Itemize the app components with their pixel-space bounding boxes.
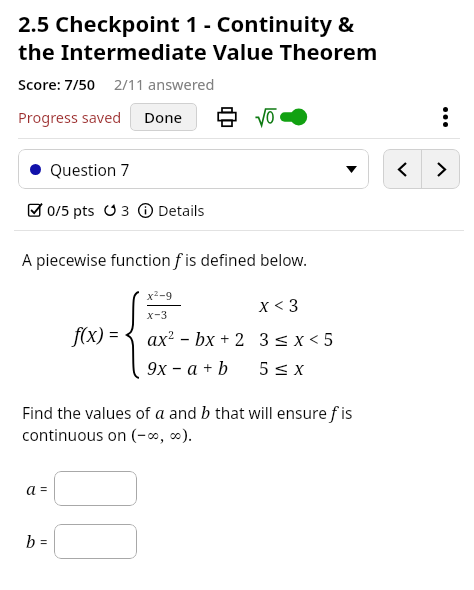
staticText: Score: 7/50 xyxy=(18,74,96,94)
staticText: Done xyxy=(144,107,183,127)
staticText: f xyxy=(331,401,337,423)
staticText: that will ensure xyxy=(211,402,331,423)
button[interactable]: Details xyxy=(138,200,205,220)
staticText: x xyxy=(294,327,304,352)
staticText: x xyxy=(147,307,154,323)
staticText: 3 ≤ xyxy=(259,327,294,352)
button[interactable]: Next question xyxy=(422,149,460,189)
staticText: A piecewise function xyxy=(22,249,175,270)
button[interactable]: Math input toggle xyxy=(255,107,306,127)
button[interactable]: Done xyxy=(130,103,197,131)
staticText: = xyxy=(40,533,48,551)
staticText: 2 xyxy=(168,327,175,342)
staticText: 5 ≤ xyxy=(259,356,294,381)
staticText: Find the values of xyxy=(22,402,155,423)
staticText: −3 xyxy=(154,307,168,323)
staticText: b xyxy=(218,356,229,381)
staticText: −9 xyxy=(159,288,173,304)
staticText: x xyxy=(294,356,304,381)
staticText: 9x xyxy=(147,356,167,381)
staticText: + 2 xyxy=(215,327,245,352)
button[interactable]: Answer input b xyxy=(54,524,137,559)
staticText: − xyxy=(175,327,195,352)
button[interactable]: Previous question xyxy=(383,149,421,189)
button[interactable]: Question 7 xyxy=(18,149,369,189)
staticText: a xyxy=(187,356,198,381)
staticText: 3 xyxy=(121,200,130,220)
staticText: 0/5 pts xyxy=(47,200,95,220)
staticText: b xyxy=(201,401,211,423)
staticText: − xyxy=(167,356,187,381)
button[interactable]: Answer input a xyxy=(54,471,137,506)
button[interactable]: More options xyxy=(430,102,460,132)
staticText: bx xyxy=(195,327,215,352)
staticText: 2.5 Checkpoint 1 - Continuity & the Inte… xyxy=(18,8,466,66)
staticText: continuous on xyxy=(22,424,131,445)
staticText: 2 xyxy=(154,288,159,298)
staticText: (−∞, ∞). xyxy=(131,423,193,445)
staticText: b xyxy=(26,530,36,553)
staticText: x xyxy=(259,293,269,318)
staticText: < 5 xyxy=(304,327,334,352)
staticText: < 3 xyxy=(269,293,299,318)
staticText: x xyxy=(147,288,154,304)
staticText: f(x) = xyxy=(74,322,120,348)
staticText: f xyxy=(175,248,181,270)
staticText: ax xyxy=(147,327,168,352)
staticText: Details xyxy=(158,200,205,220)
staticText: Question 7 xyxy=(50,159,130,180)
staticText: and xyxy=(165,402,201,423)
staticText: a xyxy=(155,401,165,423)
staticText: 2/11 answered xyxy=(114,74,215,94)
button[interactable]: Print xyxy=(213,103,241,131)
staticText: is defined below. xyxy=(181,249,308,270)
staticText: is xyxy=(337,402,353,423)
staticText: = xyxy=(40,480,48,498)
staticText: a xyxy=(26,477,36,500)
staticText: + xyxy=(198,356,218,381)
staticText: Progress saved xyxy=(18,107,122,127)
